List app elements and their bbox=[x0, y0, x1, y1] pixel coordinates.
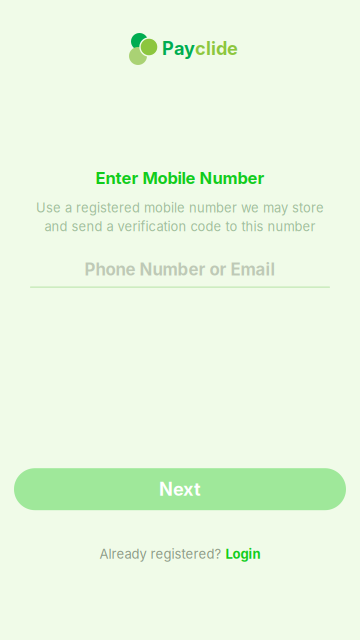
staticText: Phone Number or Email bbox=[84, 259, 275, 280]
staticText: Use a registered mobile number we may st… bbox=[36, 200, 324, 216]
staticText: Pay bbox=[162, 37, 195, 59]
button[interactable]: Already registered? bbox=[93, 542, 266, 566]
button[interactable]: Next bbox=[14, 468, 346, 510]
staticText: Enter Mobile Number bbox=[95, 168, 264, 188]
staticText: Login bbox=[225, 546, 260, 562]
staticText: clide bbox=[195, 37, 238, 59]
staticText: Next bbox=[159, 478, 201, 500]
staticText: Already registered? bbox=[99, 546, 221, 562]
button[interactable]: Phone Number or Email bbox=[30, 259, 330, 288]
staticText: and send a verification code to this num… bbox=[44, 219, 315, 234]
